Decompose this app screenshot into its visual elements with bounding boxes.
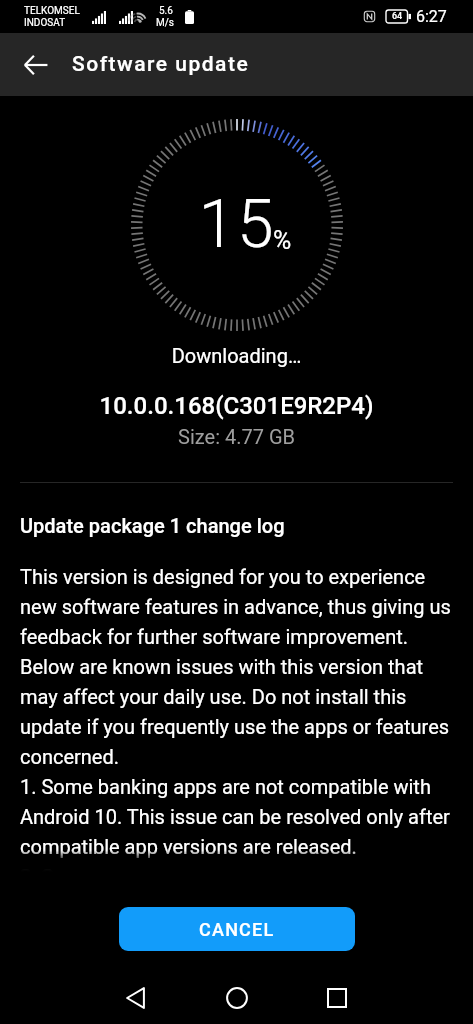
- staticText: Update package 1 change log: [20, 514, 285, 537]
- staticText: 64: [392, 11, 403, 22]
- staticText: This version is designed for you to expe…: [20, 565, 453, 872]
- staticText: 6:27: [416, 7, 447, 26]
- staticText: Size: 4.77 GB: [0, 425, 473, 448]
- button[interactable]: Recents: [313, 974, 361, 1022]
- staticText: 5.6: [159, 5, 173, 17]
- staticText: TELKOMSEL: [24, 5, 80, 17]
- button[interactable]: Home: [213, 974, 261, 1022]
- staticText: CANCEL: [199, 919, 275, 940]
- button[interactable]: Back: [12, 41, 60, 89]
- staticText: Software update: [72, 52, 250, 77]
- staticText: 15: [131, 186, 343, 263]
- staticText: Downloading…: [0, 344, 473, 367]
- button[interactable]: CANCEL: [119, 907, 355, 951]
- staticText: INDOSAT: [24, 17, 66, 29]
- staticText: 10.0.0.168(C301E9R2P4): [0, 392, 473, 420]
- button[interactable]: Back: [111, 974, 159, 1022]
- staticText: M/s: [156, 17, 175, 29]
- staticText: %: [273, 226, 292, 255]
